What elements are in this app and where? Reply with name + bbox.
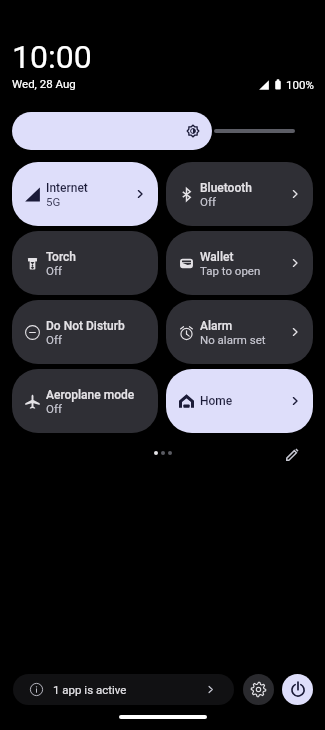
staticText: Off (46, 333, 62, 346)
button[interactable]: Torch (12, 231, 158, 295)
button[interactable]: Bluetooth (166, 162, 313, 226)
staticText: Aeroplane mode (46, 388, 135, 402)
button[interactable]: Home (166, 369, 313, 433)
staticText: 10:00 (12, 38, 92, 76)
staticText: Torch (46, 250, 76, 264)
button[interactable]: Edit tiles (279, 441, 305, 467)
staticText: Tap to open (200, 264, 261, 277)
staticText: 5G (46, 195, 61, 208)
staticText: No alarm set (200, 333, 266, 346)
staticText: Do Not Disturb (46, 319, 125, 333)
button[interactable]: Alarm (166, 300, 313, 364)
button[interactable]: Settings (243, 674, 274, 705)
staticText: Wallet (200, 250, 234, 264)
staticText: 100% (286, 78, 314, 91)
staticText: Bluetooth (200, 181, 252, 195)
button[interactable]: Wallet (166, 231, 313, 295)
staticText: Off (46, 264, 62, 277)
staticText: Off (46, 402, 62, 415)
staticText: Home (200, 394, 233, 408)
button[interactable]: 1 app is active (13, 674, 234, 705)
button[interactable]: Power (282, 674, 313, 705)
staticText: 1 app is active (53, 683, 127, 696)
button[interactable]: Do Not Disturb (12, 300, 158, 364)
staticText: Off (200, 195, 216, 208)
staticText: Wed, 28 Aug (12, 77, 76, 90)
staticText: Alarm (200, 319, 233, 333)
button[interactable]: Brightness (12, 112, 212, 150)
button[interactable]: Aeroplane mode (12, 369, 158, 433)
button[interactable]: Internet (12, 162, 158, 226)
staticText: Internet (46, 181, 88, 195)
